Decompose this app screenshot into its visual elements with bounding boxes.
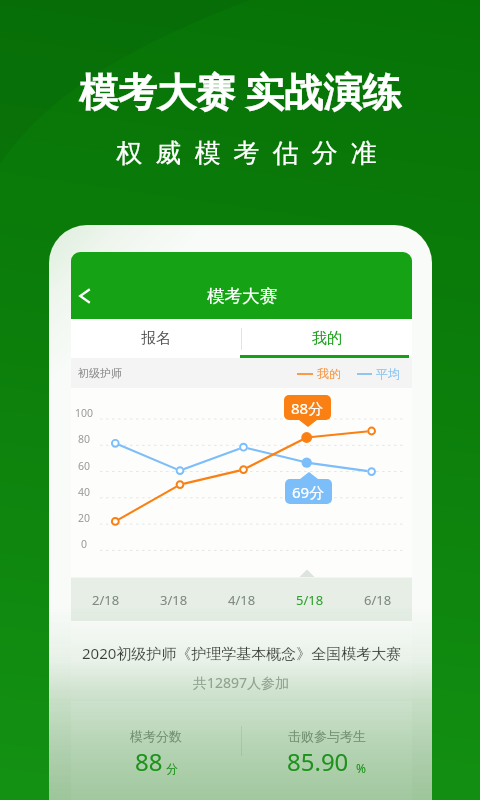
button[interactable]: 击败参与考生 xyxy=(241,701,412,800)
button[interactable]: 5/18 xyxy=(276,578,344,621)
staticText: 我的 xyxy=(317,366,341,381)
staticText: 模考分数 xyxy=(130,728,182,744)
button[interactable]: 3/18 xyxy=(140,578,208,621)
staticText: 88分 xyxy=(291,398,324,418)
staticText: 69分 xyxy=(292,482,325,502)
button[interactable]: 2/18 xyxy=(71,578,140,621)
button[interactable]: Back xyxy=(71,275,106,317)
staticText: 60 xyxy=(78,459,91,473)
staticText: 权威模考估分准 xyxy=(110,137,383,170)
staticText: 2/18 xyxy=(92,591,120,609)
button[interactable]: 报名 xyxy=(71,319,241,358)
staticText: 5/18 xyxy=(296,591,324,609)
staticText: 40 xyxy=(78,485,91,499)
button[interactable]: 4/18 xyxy=(208,578,276,621)
staticText: 100 xyxy=(75,406,94,420)
button[interactable]: 模考分数 xyxy=(71,701,241,800)
button[interactable]: 我的 xyxy=(241,319,412,358)
staticText: 2020初级护师《护理学基本概念》全国模考大赛 xyxy=(82,643,402,663)
staticText: 我的 xyxy=(312,329,342,348)
staticText: 报名 xyxy=(141,329,171,348)
staticText: 4/18 xyxy=(228,591,256,609)
staticText: 击败参与考生 xyxy=(288,728,366,744)
staticText: 85.90 xyxy=(287,745,349,778)
staticText: 0 xyxy=(81,537,88,551)
staticText: 88 xyxy=(135,745,163,778)
staticText: 共12897人参加 xyxy=(193,673,290,692)
staticText: 6/18 xyxy=(364,591,392,609)
button[interactable]: 6/18 xyxy=(344,578,412,621)
staticText: 分 xyxy=(166,761,178,776)
staticText: 3/18 xyxy=(160,591,188,609)
staticText: % xyxy=(356,760,366,776)
staticText: 初级护师 xyxy=(78,366,122,380)
staticText: 20 xyxy=(78,511,91,525)
staticText: 80 xyxy=(78,432,91,446)
staticText: 平均 xyxy=(376,366,400,381)
staticText: 模考大赛 实战演练 xyxy=(79,64,402,117)
staticText: 模考大赛 xyxy=(207,285,277,307)
